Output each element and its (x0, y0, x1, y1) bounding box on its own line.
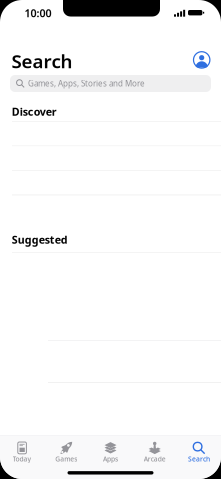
button[interactable]: Today (0, 439, 44, 466)
staticText: Arcade (144, 454, 166, 463)
staticText: 10:00 (24, 6, 51, 20)
button[interactable]: Search (177, 439, 221, 466)
button[interactable]: Games, Apps, Stories and More (10, 75, 211, 92)
staticText: Apps (103, 454, 118, 463)
button[interactable]: Arcade (133, 439, 177, 466)
staticText: Search (188, 454, 210, 463)
button[interactable]: Apps (88, 439, 133, 466)
staticText: Games, Apps, Stories and More (28, 78, 145, 89)
button[interactable]: Account (193, 51, 211, 69)
staticText: Discover (12, 104, 57, 119)
staticText: Games (55, 454, 77, 463)
button[interactable]: Games (44, 439, 88, 466)
staticText: Search (11, 48, 72, 73)
staticText: Today (13, 454, 32, 463)
staticText: Suggested (12, 232, 68, 247)
